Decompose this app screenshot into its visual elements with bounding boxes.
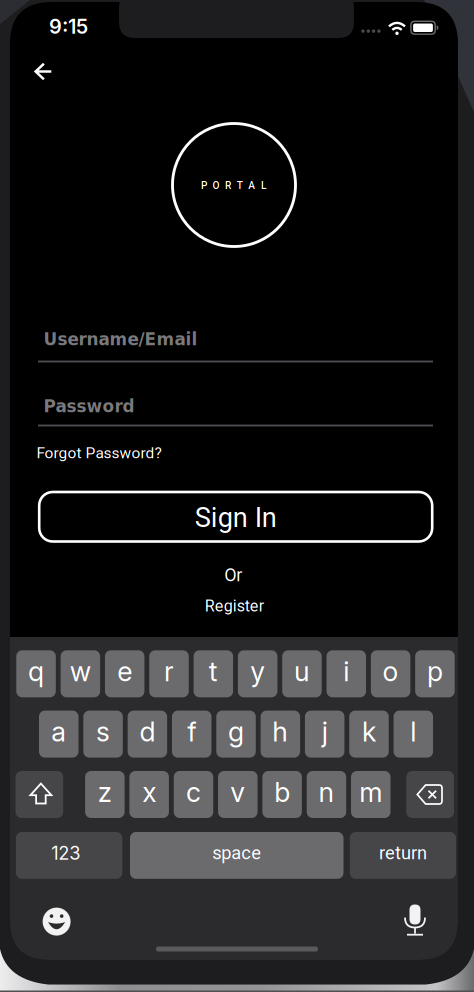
staticText: n [318, 776, 334, 808]
button[interactable]: z [85, 771, 125, 818]
staticText: e [117, 655, 132, 688]
button[interactable]: m [351, 771, 390, 818]
button[interactable]: j [305, 711, 344, 758]
staticText: d [139, 715, 155, 748]
button[interactable]: Sign In [39, 492, 432, 541]
staticText: v [230, 776, 245, 808]
staticText: g [228, 715, 244, 748]
button[interactable]: return [350, 832, 456, 879]
staticText: R [225, 180, 231, 191]
button[interactable]: o [371, 650, 410, 697]
button[interactable]: Dictate [0, 0, 474, 992]
staticText: 123 [51, 842, 80, 864]
staticText: t [209, 655, 218, 688]
staticText: y [250, 655, 265, 688]
button[interactable]: v [218, 771, 258, 818]
button[interactable]: Delete [406, 771, 454, 818]
button[interactable]: i [326, 650, 366, 697]
staticText: z [98, 776, 112, 808]
staticText: Sign In [195, 502, 277, 534]
button[interactable]: e [105, 650, 144, 697]
button[interactable]: Password [0, 0, 474, 992]
button[interactable]: a [39, 711, 78, 758]
button[interactable]: u [282, 650, 322, 697]
staticText: x [142, 776, 156, 808]
button[interactable]: w [61, 650, 100, 697]
staticText: u [294, 655, 310, 688]
staticText: k [362, 715, 376, 748]
staticText: h [272, 715, 288, 748]
button[interactable]: b [262, 771, 302, 818]
staticText: a [51, 715, 66, 748]
staticText: O [212, 180, 219, 191]
staticText: 9:15 [49, 14, 88, 39]
staticText: q [28, 655, 44, 688]
staticText: w [70, 655, 91, 688]
staticText: b [274, 776, 290, 808]
button[interactable]: Shift [16, 771, 63, 818]
staticText: p [427, 655, 443, 688]
button[interactable]: t [194, 650, 233, 697]
staticText: o [383, 655, 399, 688]
button[interactable]: n [307, 771, 346, 818]
button[interactable]: y [238, 650, 277, 697]
staticText: Username/Email [43, 329, 197, 349]
staticText: return [379, 842, 427, 864]
button[interactable]: l [394, 711, 433, 758]
staticText: space [212, 842, 261, 864]
staticText: c [186, 776, 201, 808]
staticText: P [201, 180, 207, 191]
button[interactable]: Forgot Password? [36, 444, 161, 462]
staticText: Or [224, 564, 242, 586]
button[interactable]: q [16, 650, 56, 697]
staticText: Forgot Password? [36, 444, 161, 462]
button[interactable]: r [149, 650, 189, 697]
staticText: s [96, 715, 110, 748]
button[interactable]: g [216, 711, 256, 758]
button[interactable]: Username/Email [0, 0, 474, 992]
button[interactable]: Emoji [0, 0, 474, 992]
staticText: j [322, 715, 328, 748]
button[interactable]: Back [0, 0, 474, 992]
button[interactable]: space [130, 832, 343, 879]
staticText: i [343, 655, 349, 688]
staticText: m [359, 776, 382, 808]
button[interactable]: k [349, 711, 389, 758]
button[interactable]: Register [205, 596, 264, 615]
staticText: f [187, 715, 196, 748]
staticText: l [410, 715, 416, 748]
button[interactable]: x [129, 771, 169, 818]
staticText: Register [205, 596, 264, 615]
staticText: L [261, 180, 266, 191]
button[interactable]: h [261, 711, 300, 758]
button[interactable]: p [415, 650, 455, 697]
button[interactable]: d [128, 711, 167, 758]
button[interactable]: s [83, 711, 123, 758]
staticText: A [248, 180, 255, 191]
staticText: T [237, 180, 243, 191]
button[interactable]: f [172, 711, 211, 758]
button[interactable]: c [174, 771, 213, 818]
button[interactable]: 123 [16, 832, 122, 879]
staticText: Password [43, 396, 134, 416]
staticText: r [164, 655, 174, 688]
